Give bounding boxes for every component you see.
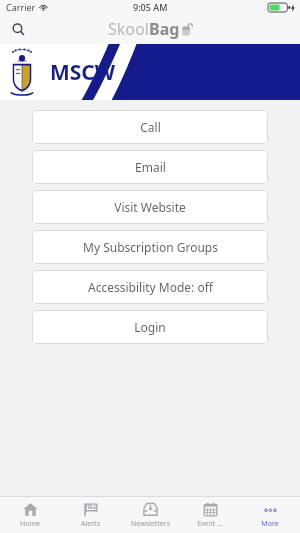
button[interactable]: My Subscription Groups	[32, 230, 268, 264]
staticText: Home	[20, 519, 40, 529]
button[interactable]: Email	[32, 150, 268, 184]
staticText: My Subscription Groups	[83, 239, 218, 255]
staticText: Alerts	[81, 519, 100, 529]
staticText: Accessibility Mode: off	[88, 279, 213, 295]
button[interactable]: Home	[0, 497, 60, 533]
button[interactable]: Call	[32, 110, 268, 144]
staticText: More	[261, 519, 279, 529]
staticText: Skool	[108, 18, 149, 40]
staticText: Event ...	[197, 519, 223, 529]
button[interactable]: Event ...	[180, 497, 240, 533]
staticText: Visit Website	[114, 199, 186, 215]
staticText: MSCW	[50, 58, 116, 87]
staticText: Login	[134, 319, 166, 335]
staticText: Carrier	[6, 1, 36, 13]
button[interactable]: More	[240, 497, 300, 533]
staticText: Call	[140, 119, 161, 135]
staticText: Bag	[149, 18, 180, 40]
button[interactable]: Accessibility Mode: off	[32, 270, 268, 304]
button[interactable]: Visit Website	[32, 190, 268, 224]
staticText: Newsletters	[131, 519, 170, 529]
button[interactable]: Login	[32, 310, 268, 344]
button[interactable]: Newsletters	[120, 497, 180, 533]
staticText: Email	[135, 159, 166, 175]
staticText: 9:05 AM	[133, 1, 168, 13]
button[interactable]: Search	[4, 15, 32, 43]
button[interactable]: Alerts	[60, 497, 120, 533]
